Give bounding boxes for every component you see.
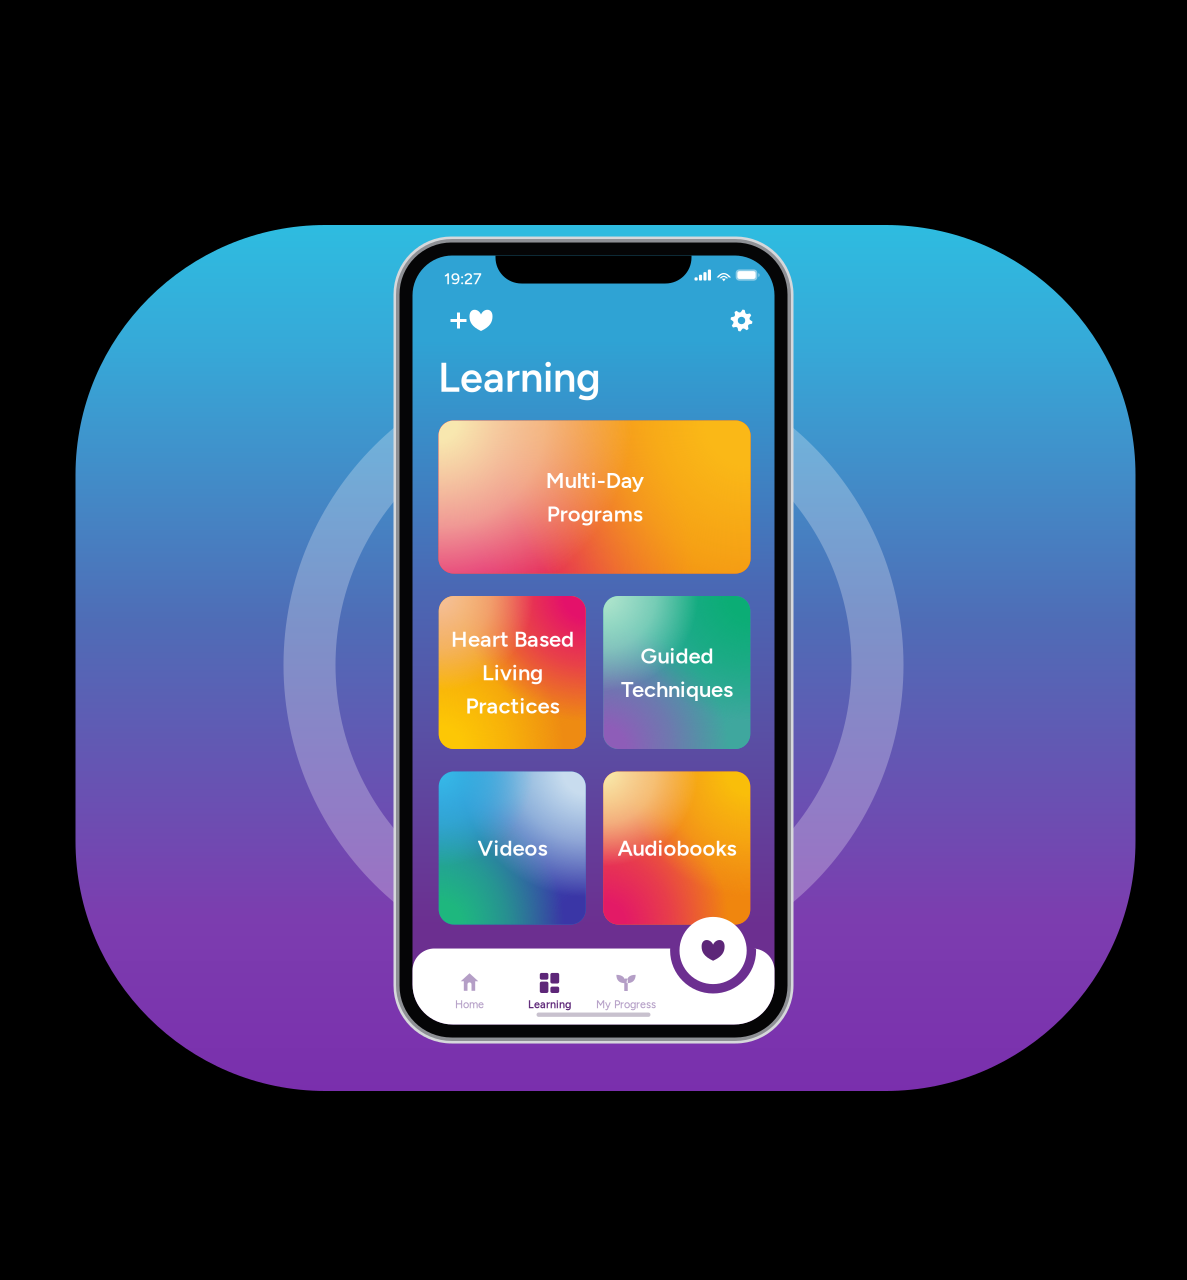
staticText: Home — [455, 998, 484, 1011]
button[interactable]: Audiobooks — [603, 771, 750, 924]
staticText: Videos — [477, 835, 547, 861]
staticText: Heart Based Living Practices — [451, 626, 574, 719]
staticText: Learning — [528, 998, 571, 1011]
button[interactable]: Videos — [439, 771, 586, 924]
staticText: Audiobooks — [617, 835, 736, 861]
staticText: Guided Techniques — [621, 643, 733, 702]
staticText: Learning — [438, 352, 601, 402]
staticText: My Progress — [596, 998, 656, 1011]
button[interactable]: Home — [429, 971, 509, 1013]
button[interactable]: Settings — [722, 303, 760, 337]
button[interactable]: Heart Based Living Practices — [439, 596, 586, 749]
button[interactable]: Guided Techniques — [603, 596, 750, 749]
staticText: Multi-Day Programs — [545, 467, 643, 527]
staticText: 19:27 — [444, 269, 482, 288]
button[interactable]: Favourites — [679, 917, 747, 984]
button[interactable]: Multi-Day Programs — [438, 420, 750, 573]
button[interactable]: Add to favourites — [441, 303, 501, 337]
button[interactable]: My Progress — [586, 971, 666, 1013]
button[interactable]: Learning — [509, 971, 589, 1013]
